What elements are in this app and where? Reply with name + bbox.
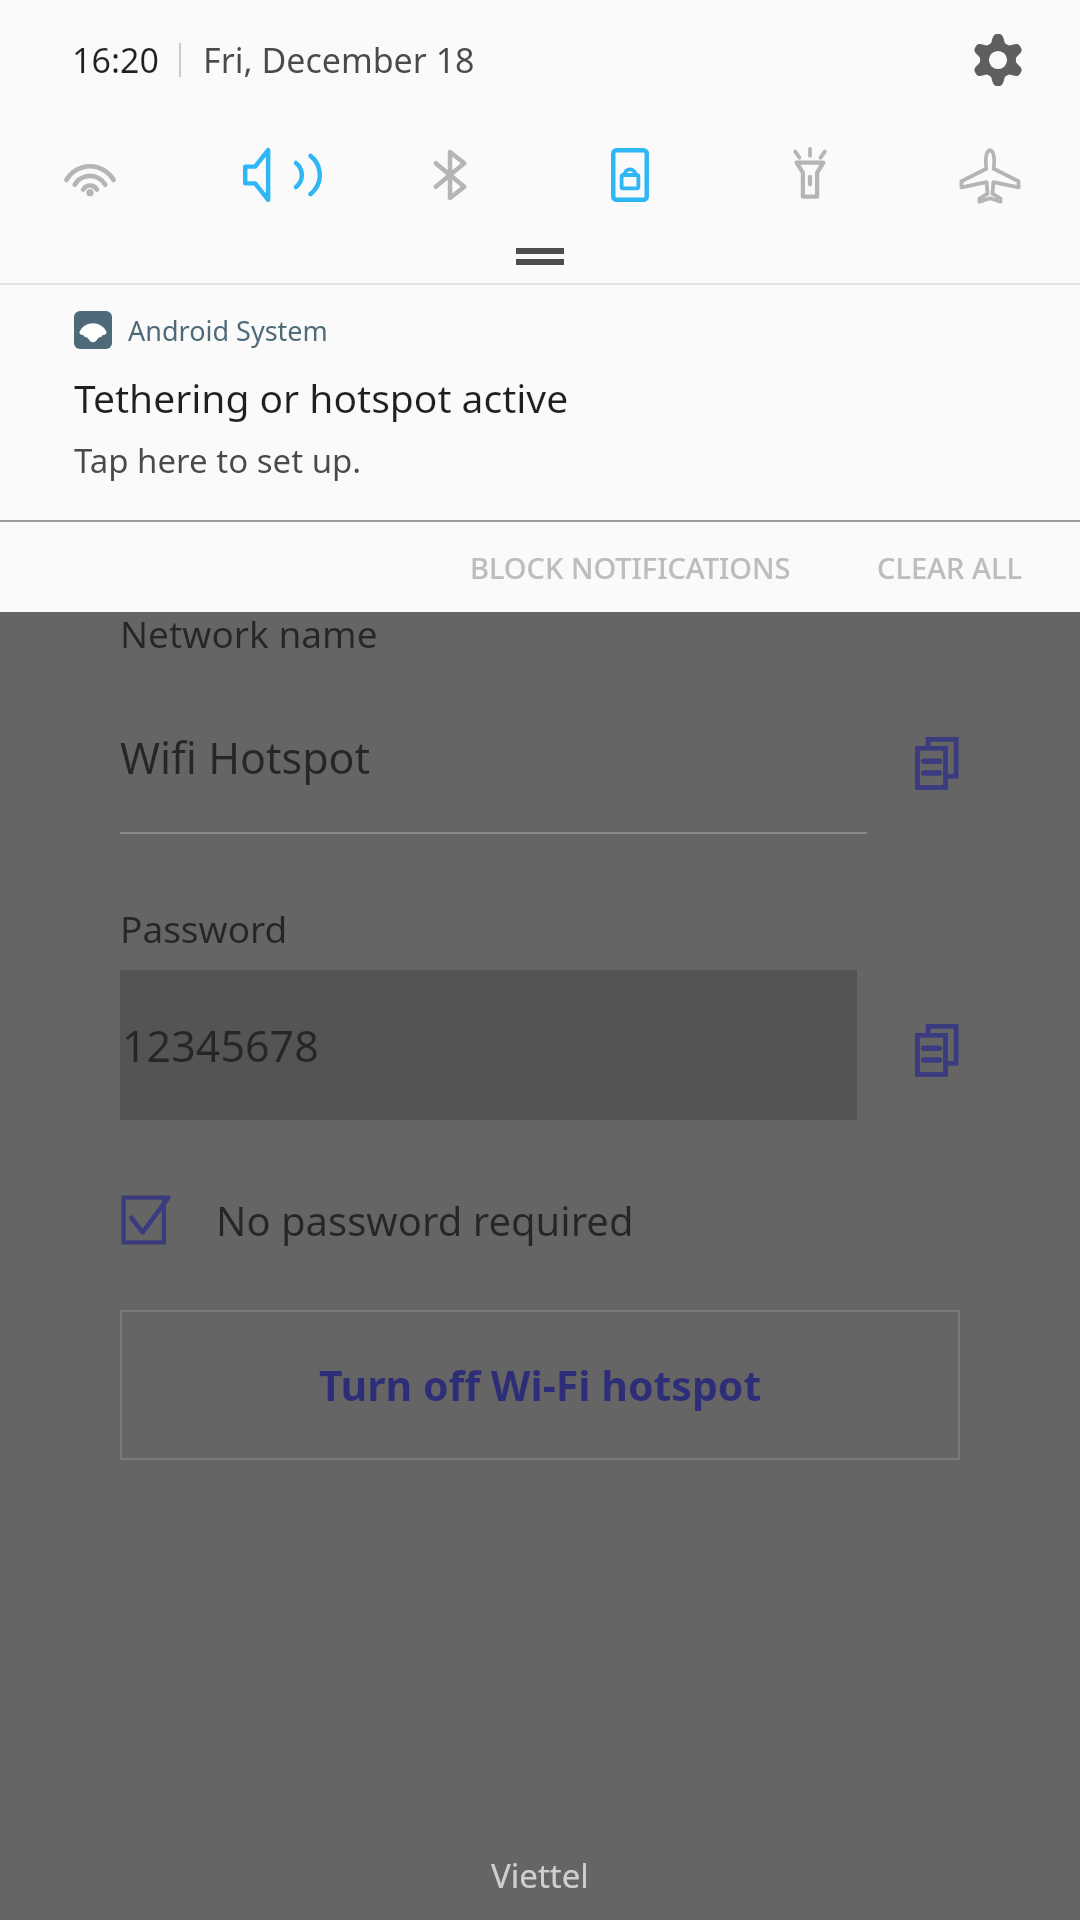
button[interactable]: CLEAR ALL	[851, 522, 1048, 612]
staticText: Android System	[128, 312, 328, 349]
staticText: CLEAR ALL	[877, 548, 1022, 587]
button[interactable]: BLOCK NOTIFICATIONS	[444, 522, 817, 612]
button[interactable]: Bluetooth	[360, 120, 540, 230]
button[interactable]: Copy network name	[905, 728, 977, 800]
button[interactable]: Copy password	[905, 1015, 977, 1087]
button[interactable]: Turn off Wi-Fi hotspot	[121, 1311, 959, 1459]
button[interactable]: Screen lock	[540, 120, 720, 230]
button[interactable]: Flashlight	[720, 120, 900, 230]
staticText: Fri, December 18	[203, 37, 475, 83]
button[interactable]: Airplane mode	[900, 120, 1080, 230]
button[interactable]: Android System	[0, 285, 1080, 520]
staticText: Tap here to set up.	[74, 438, 362, 483]
staticText: Tethering or hotspot active	[74, 371, 569, 424]
staticText: Wifi Hotspot	[120, 728, 371, 787]
button[interactable]: 12345678	[120, 970, 857, 1120]
button[interactable]: Sound	[180, 120, 360, 230]
staticText: Viettel	[491, 1853, 589, 1898]
staticText: 16:20	[72, 37, 159, 83]
button[interactable]: No password required	[118, 1192, 634, 1248]
button[interactable]: Wi-Fi	[0, 120, 180, 230]
staticText: Password	[120, 903, 288, 953]
staticText: 12345678	[122, 1016, 319, 1075]
staticText: Turn off Wi-Fi hotspot	[319, 1357, 762, 1413]
button[interactable]: Settings	[960, 22, 1036, 98]
staticText: BLOCK NOTIFICATIONS	[470, 548, 791, 587]
staticText: No password required	[216, 1193, 634, 1247]
staticText: Network name	[120, 608, 378, 658]
